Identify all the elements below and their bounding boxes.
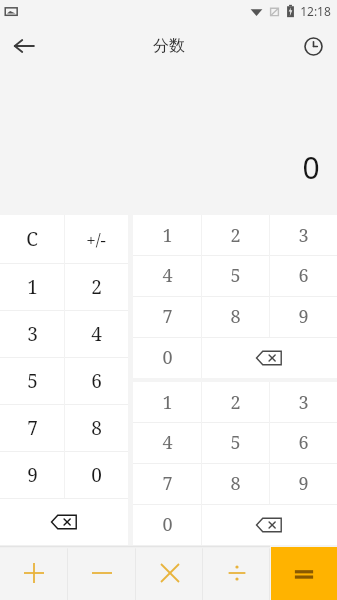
staticText: 0 [91,462,102,488]
staticText: 7 [27,415,38,441]
button[interactable]: 0 [133,337,201,378]
staticText: 6 [298,263,309,288]
staticText: 8 [230,471,241,496]
button[interactable]: 7 [0,404,64,451]
button[interactable]: Backspace [201,337,337,378]
button[interactable]: 6 [269,255,337,296]
button[interactable]: 8 [201,296,269,337]
button[interactable]: 1 [133,382,201,422]
staticText: 分数 [153,36,185,56]
staticText: 9 [298,304,309,329]
staticText: 7 [162,304,173,329]
staticText: 3 [298,390,309,415]
button[interactable]: Back [0,22,48,70]
staticText: 12:18 [300,3,331,19]
staticText: 4 [91,321,102,347]
button[interactable]: 8 [64,404,128,451]
button[interactable]: History [289,22,337,70]
button[interactable]: 9 [269,463,337,504]
button[interactable]: 1 [0,263,64,310]
staticText: 0 [302,147,320,188]
button[interactable]: 5 [201,255,269,296]
button[interactable]: 1 [133,215,201,255]
button[interactable]: 7 [133,296,201,337]
button[interactable]: 0 [0,70,337,215]
button[interactable]: 4 [64,310,128,357]
staticText: 1 [27,274,38,300]
button[interactable]: 2 [201,215,269,255]
staticText: 2 [230,390,241,415]
staticText: 0 [162,512,173,537]
staticText: 8 [91,415,102,441]
staticText: 3 [27,321,38,347]
button[interactable]: 5 [0,357,64,404]
staticText: 6 [91,368,102,394]
button[interactable] [68,545,136,600]
button[interactable]: +/- [64,215,128,263]
button[interactable]: 6 [269,422,337,463]
staticText: 3 [298,223,309,248]
staticText: 1 [162,390,173,415]
button[interactable]: 2 [64,263,128,310]
button[interactable]: 3 [269,382,337,422]
button[interactable]: 4 [133,422,201,463]
staticText: 4 [162,263,173,288]
button[interactable]: Backspace [201,504,337,545]
button[interactable]: 0 [133,504,201,545]
staticText: 5 [27,368,38,394]
staticText: 5 [230,263,241,288]
staticText: 5 [230,430,241,455]
button[interactable] [203,545,270,600]
staticText: C [26,226,38,252]
button[interactable]: 7 [133,463,201,504]
button[interactable]: 3 [0,310,64,357]
button[interactable]: 9 [269,296,337,337]
staticText: 2 [230,223,241,248]
button[interactable]: 9 [0,451,64,498]
button[interactable]: 2 [201,382,269,422]
button[interactable] [0,545,68,600]
button[interactable]: 6 [64,357,128,404]
staticText: 9 [27,462,38,488]
staticText: 2 [91,274,102,300]
staticText: +/- [86,228,106,251]
button[interactable]: Equals [271,547,337,600]
staticText: 7 [162,471,173,496]
button[interactable]: 4 [133,255,201,296]
staticText: 1 [162,223,173,248]
button[interactable]: Backspace [0,498,128,545]
staticText: 0 [162,345,173,370]
staticText: 6 [298,430,309,455]
button[interactable]: 5 [201,422,269,463]
staticText: 4 [162,430,173,455]
button[interactable]: 3 [269,215,337,255]
button[interactable]: 0 [64,451,128,498]
button[interactable]: C [0,215,64,263]
staticText: 8 [230,304,241,329]
button[interactable]: 8 [201,463,269,504]
button[interactable] [136,545,203,600]
staticText: 9 [298,471,309,496]
